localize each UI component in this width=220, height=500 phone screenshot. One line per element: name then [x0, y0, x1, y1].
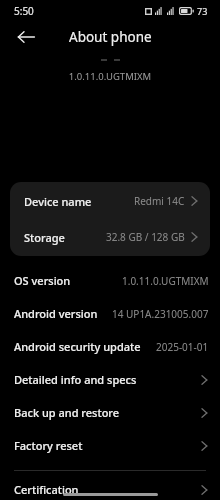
- staticText: 5:50: [14, 4, 34, 18]
- staticText: 14 UP1A.231005.007: [112, 307, 209, 321]
- button[interactable]: Certification: [0, 479, 220, 500]
- staticText: 2025-01-01: [156, 340, 209, 354]
- button[interactable]: Detailed info and specs: [0, 363, 220, 396]
- staticText: Certification: [14, 482, 79, 497]
- staticText: OS version: [14, 273, 71, 288]
- button[interactable]: Factory reset: [0, 429, 220, 462]
- staticText: Back up and restore: [14, 405, 120, 420]
- staticText: 1.0.11.0.UGTMIXM: [0, 70, 220, 83]
- staticText: Detailed info and specs: [14, 372, 137, 387]
- staticText: Redmi 14C: [134, 194, 185, 208]
- button[interactable]: Android version: [0, 297, 220, 330]
- button[interactable]: Back up and restore: [0, 396, 220, 429]
- button[interactable]: Storage: [10, 219, 210, 255]
- staticText: 32.8 GB / 128 GB: [106, 230, 185, 244]
- staticText: Storage: [24, 230, 65, 245]
- button[interactable]: Back: [14, 25, 38, 49]
- staticText: 73: [197, 5, 208, 17]
- staticText: Factory reset: [14, 438, 83, 453]
- button[interactable]: Device name: [10, 183, 210, 219]
- button[interactable]: Android security update: [0, 330, 220, 363]
- staticText: About phone: [69, 28, 152, 46]
- staticText: Android version: [14, 306, 98, 321]
- button[interactable]: OS version: [0, 264, 220, 297]
- staticText: Device name: [24, 194, 92, 209]
- staticText: 1.0.11.0.UGTMIXM: [122, 274, 209, 288]
- staticText: Android security update: [14, 339, 141, 354]
